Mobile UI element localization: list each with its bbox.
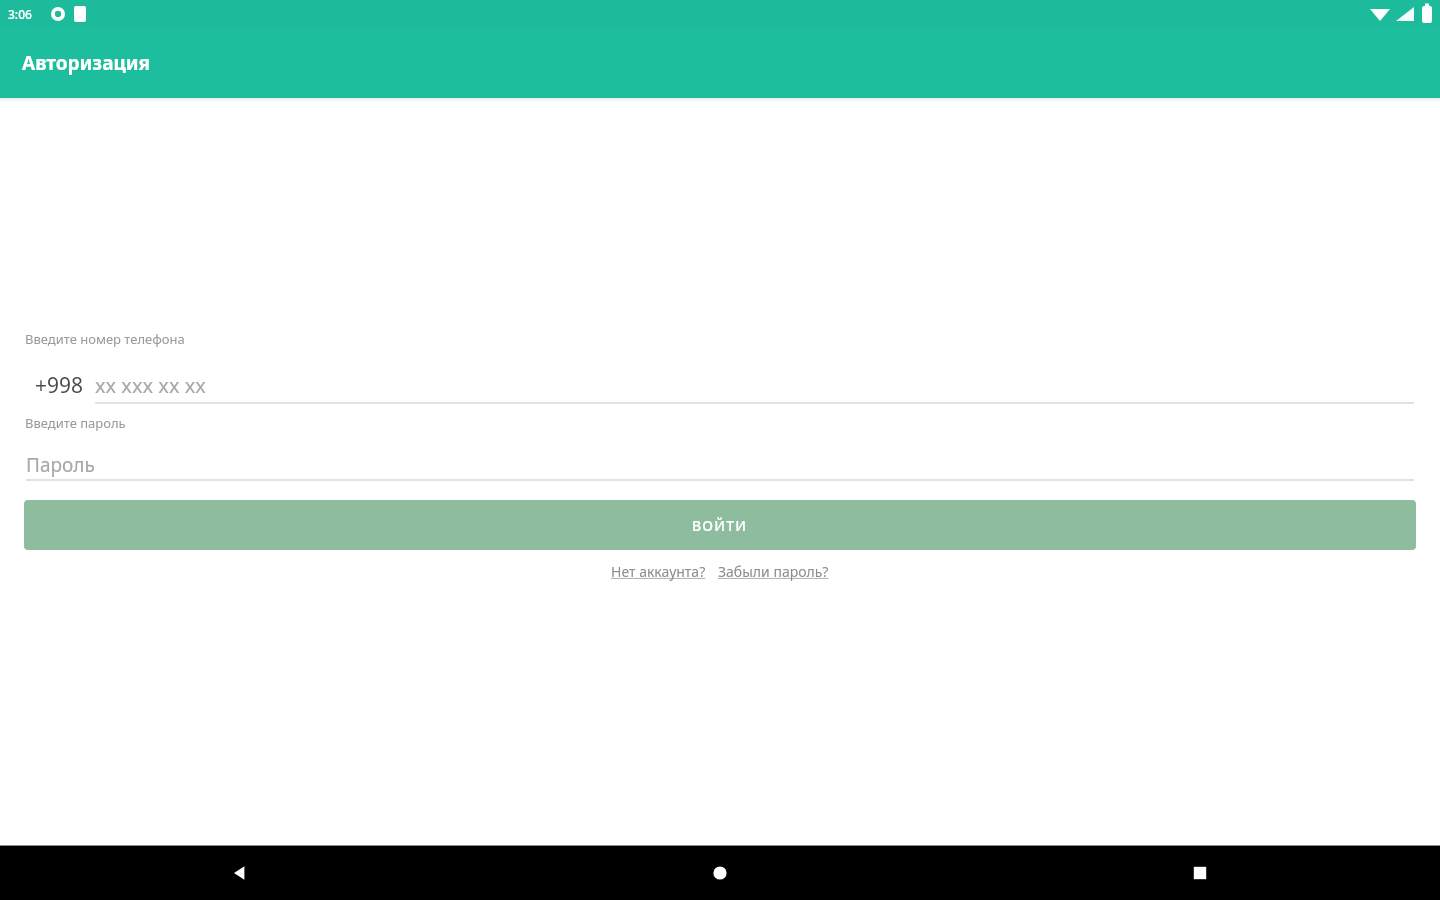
staticText: Нет аккаунта?	[611, 562, 706, 581]
button[interactable]: ВОЙТИ	[24, 500, 1416, 550]
button[interactable]: Back	[0, 846, 480, 900]
button[interactable]: +998	[0, 366, 1440, 404]
button[interactable]: Пароль	[26, 448, 1414, 481]
staticText: Введите пароль	[25, 414, 126, 432]
staticText: Забыли пароль?	[718, 562, 829, 581]
staticText: Пароль	[26, 452, 95, 478]
staticText: Авторизация	[22, 50, 151, 76]
staticText: +998	[35, 371, 84, 400]
staticText: xx xxx xx xx	[95, 372, 206, 399]
button[interactable]: Recent apps	[960, 846, 1440, 900]
button[interactable]: Забыли пароль?	[718, 558, 829, 585]
staticText: ВОЙТИ	[692, 516, 748, 535]
staticText: 3:06	[8, 6, 32, 22]
staticText: Введите номер телефона	[25, 330, 185, 348]
button[interactable]: Home	[480, 846, 960, 900]
button[interactable]: Нет аккаунта?	[611, 558, 706, 585]
